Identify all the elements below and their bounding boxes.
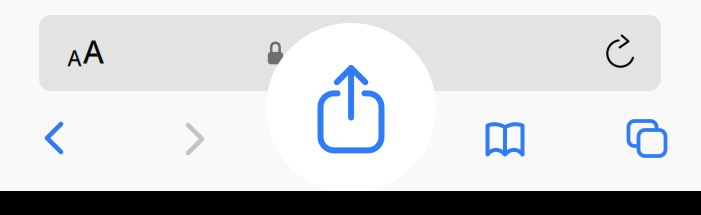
button[interactable]: Share (266, 23, 436, 193)
staticText: A (67, 44, 81, 72)
staticText: A (83, 30, 104, 72)
button[interactable]: A (67, 25, 129, 77)
button[interactable]: Reload (596, 29, 644, 77)
button[interactable]: Tabs (618, 111, 676, 166)
button[interactable]: Bookmarks (477, 113, 533, 165)
button[interactable]: Back (27, 113, 81, 163)
button[interactable]: Forward (168, 114, 222, 164)
